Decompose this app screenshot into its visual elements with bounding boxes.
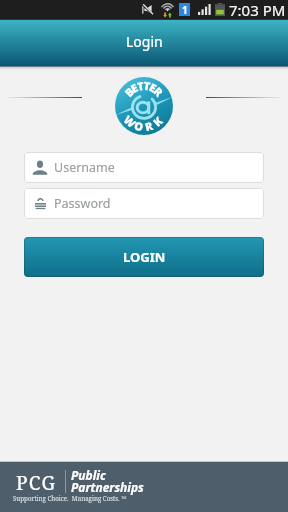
staticText: PCG [16, 470, 57, 496]
button[interactable]: Username [24, 152, 264, 183]
staticText: 7:03 PM [229, 0, 286, 19]
staticText: Login [126, 32, 163, 51]
staticText: Public [71, 467, 106, 483]
staticText: Password [54, 195, 111, 212]
staticText: Supporting Choice. Managing Costs. ™ [13, 494, 127, 502]
staticText: Partnerships [71, 479, 144, 495]
staticText: LOGIN [123, 248, 166, 266]
button[interactable]: Password [24, 188, 264, 219]
staticText: 1 [182, 3, 188, 16]
button[interactable]: LOGIN [24, 237, 264, 277]
staticText: Username [54, 159, 115, 176]
